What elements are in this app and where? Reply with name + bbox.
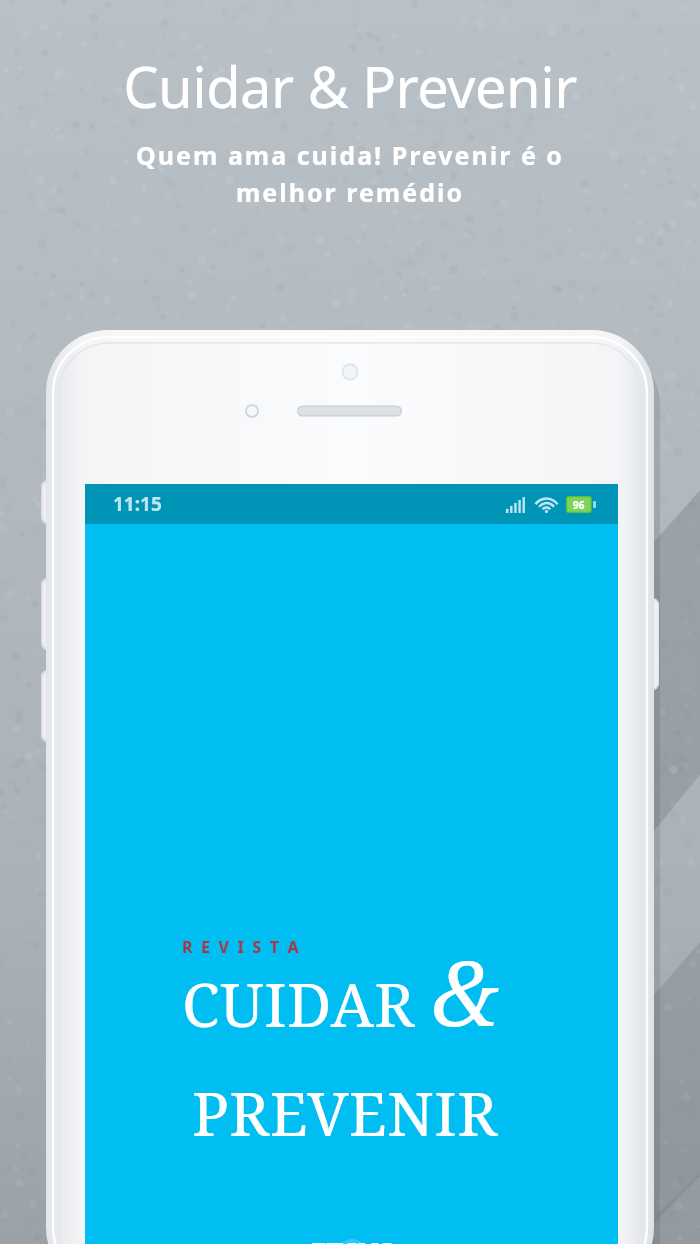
staticText: Quem ama cuida! Prevenir é o melhor remé… bbox=[136, 138, 564, 209]
staticText: PREVENIR bbox=[192, 1071, 498, 1154]
staticText: CUIDAR bbox=[182, 962, 415, 1045]
button[interactable]: EZSYS bbox=[300, 1229, 404, 1244]
staticText: R E V I S T A bbox=[182, 936, 301, 958]
staticText: 11:15 bbox=[113, 491, 162, 517]
staticText: EZSYS bbox=[310, 1233, 394, 1244]
staticText: Cuidar & Prevenir bbox=[123, 48, 577, 124]
staticText: & bbox=[431, 930, 498, 1053]
staticText: 96 bbox=[573, 498, 585, 512]
